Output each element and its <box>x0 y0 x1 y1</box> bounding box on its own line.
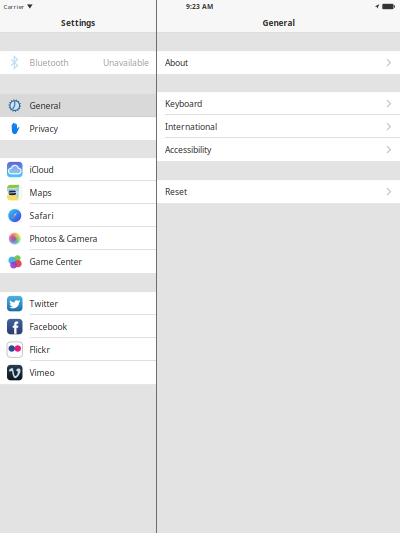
staticText: 9:23 AM <box>186 2 213 11</box>
staticText: Accessibility <box>165 144 211 155</box>
button[interactable]: Maps <box>0 181 156 204</box>
staticText: Carrier <box>3 2 24 11</box>
staticText: Unavailable <box>103 57 149 68</box>
button[interactable]: About <box>157 51 400 74</box>
staticText: Privacy <box>29 123 57 134</box>
staticText: Safari <box>29 210 53 221</box>
staticText: General <box>29 100 60 111</box>
button[interactable]: Privacy <box>0 117 156 140</box>
staticText: About <box>165 57 188 68</box>
staticText: General <box>262 17 294 28</box>
button[interactable]: Safari <box>0 204 156 227</box>
button[interactable]: Accessibility <box>157 138 400 161</box>
button[interactable]: Facebook <box>0 315 156 338</box>
staticText: Vimeo <box>29 367 54 378</box>
staticText: iCloud <box>29 164 53 175</box>
button[interactable]: International <box>157 115 400 138</box>
button[interactable]: Keyboard <box>157 92 400 115</box>
button[interactable]: iCloud <box>0 158 156 181</box>
button[interactable]: Reset <box>157 180 400 203</box>
staticText: Keyboard <box>165 98 202 109</box>
staticText: Photos & Camera <box>29 233 97 244</box>
staticText: Reset <box>165 186 187 197</box>
staticText: Facebook <box>29 321 67 332</box>
staticText: Game Center <box>29 256 82 267</box>
staticText: Twitter <box>29 298 58 309</box>
button[interactable]: Flickr <box>0 338 156 361</box>
button[interactable]: Photos & Camera <box>0 227 156 250</box>
staticText: Bluetooth <box>29 57 68 68</box>
staticText: Settings <box>61 17 95 28</box>
staticText: Maps <box>29 187 51 198</box>
staticText: International <box>165 121 217 132</box>
button[interactable]: Twitter <box>0 292 156 315</box>
button[interactable]: Bluetooth <box>0 51 156 74</box>
button[interactable]: Vimeo <box>0 361 156 384</box>
button[interactable]: Game Center <box>0 250 156 273</box>
staticText: Flickr <box>29 344 50 355</box>
button[interactable]: General <box>0 94 156 117</box>
